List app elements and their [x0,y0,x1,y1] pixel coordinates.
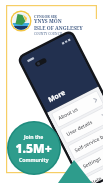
button[interactable]: Isle of Anglesey County Council app prom… [0,0,103,183]
